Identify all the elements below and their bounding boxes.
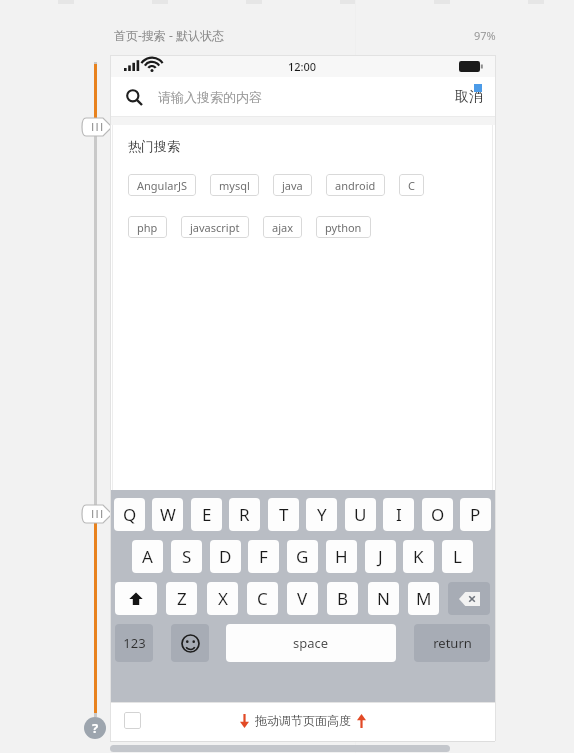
- button[interactable]: ajax: [263, 216, 302, 238]
- staticText: ajax: [272, 220, 293, 235]
- button[interactable]: E: [191, 498, 222, 531]
- button[interactable]: Shift: [115, 582, 157, 615]
- staticText: X: [218, 587, 228, 610]
- staticText: A: [142, 545, 153, 568]
- button[interactable]: Help: [84, 717, 106, 739]
- button[interactable]: return: [414, 624, 490, 662]
- staticText: Q: [123, 503, 137, 526]
- staticText: E: [202, 503, 212, 526]
- staticText: C: [408, 178, 415, 193]
- button[interactable]: java: [273, 174, 312, 196]
- staticText: N: [377, 587, 390, 610]
- staticText: I: [396, 503, 402, 526]
- staticText: AngularJS: [137, 178, 187, 193]
- staticText: P: [470, 503, 481, 526]
- staticText: python: [325, 220, 362, 235]
- button[interactable]: O: [422, 498, 453, 531]
- staticText: php: [137, 220, 158, 235]
- button[interactable]: R: [229, 498, 260, 531]
- button[interactable]: Z: [166, 582, 197, 615]
- staticText: T: [279, 503, 289, 526]
- button[interactable]: Resize handle: [82, 505, 112, 523]
- staticText: Y: [317, 503, 327, 526]
- button[interactable]: V: [287, 582, 318, 615]
- staticText: V: [297, 587, 308, 610]
- staticText: R: [239, 503, 250, 526]
- staticText: O: [431, 503, 445, 526]
- staticText: 取消: [455, 88, 483, 106]
- button[interactable]: B: [327, 582, 358, 615]
- button[interactable]: G: [287, 540, 318, 573]
- button[interactable]: U: [345, 498, 376, 531]
- staticText: S: [182, 545, 192, 568]
- staticText: 热门搜索: [128, 138, 180, 154]
- button[interactable]: space: [226, 624, 396, 662]
- button[interactable]: H: [326, 540, 357, 573]
- button[interactable]: Backspace: [448, 582, 490, 615]
- button[interactable]: P: [460, 498, 491, 531]
- button[interactable]: python: [316, 216, 371, 238]
- staticText: 12:00: [288, 59, 317, 74]
- button[interactable]: C: [399, 174, 424, 196]
- staticText: M: [416, 587, 432, 610]
- button[interactable]: W: [152, 498, 183, 531]
- button[interactable]: Y: [306, 498, 337, 531]
- button[interactable]: mysql: [210, 174, 259, 196]
- button[interactable]: D: [210, 540, 241, 573]
- staticText: C: [257, 587, 268, 610]
- staticText: Z: [177, 587, 187, 610]
- button[interactable]: Resize handle: [82, 118, 112, 136]
- button[interactable]: AngularJS: [128, 174, 196, 196]
- button[interactable]: Q: [114, 498, 145, 531]
- staticText: 首页-搜索 - 默认状态: [114, 27, 224, 43]
- button[interactable]: X: [207, 582, 238, 615]
- staticText: J: [378, 545, 383, 568]
- button[interactable]: L: [442, 540, 473, 573]
- staticText: mysql: [219, 178, 250, 193]
- staticText: F: [259, 545, 268, 568]
- button[interactable]: javascript: [181, 216, 249, 238]
- button[interactable]: F: [248, 540, 279, 573]
- button[interactable]: 123: [115, 624, 153, 662]
- staticText: javascript: [190, 220, 240, 235]
- button[interactable]: C: [247, 582, 278, 615]
- staticText: 拖动调节页面高度: [255, 713, 351, 728]
- staticText: 97%: [474, 28, 496, 43]
- button[interactable]: Select: [124, 712, 141, 729]
- button[interactable]: M: [408, 582, 439, 615]
- button[interactable]: S: [171, 540, 202, 573]
- staticText: D: [219, 545, 232, 568]
- staticText: H: [335, 545, 348, 568]
- button[interactable]: T: [268, 498, 299, 531]
- button[interactable]: I: [383, 498, 414, 531]
- button[interactable]: K: [403, 540, 434, 573]
- staticText: G: [296, 545, 309, 568]
- button[interactable]: N: [368, 582, 399, 615]
- button[interactable]: A: [132, 540, 163, 573]
- staticText: 123: [123, 634, 146, 652]
- staticText: ?: [92, 719, 99, 737]
- staticText: java: [282, 178, 303, 193]
- staticText: K: [413, 545, 424, 568]
- button[interactable]: Emoji: [171, 624, 209, 662]
- staticText: B: [337, 587, 349, 610]
- staticText: U: [354, 503, 367, 526]
- staticText: 请输入搜索的内容: [158, 89, 262, 105]
- staticText: L: [453, 545, 462, 568]
- button[interactable]: android: [326, 174, 385, 196]
- staticText: return: [433, 634, 472, 652]
- button[interactable]: 取消: [451, 82, 487, 112]
- staticText: W: [160, 503, 176, 526]
- button[interactable]: J: [365, 540, 396, 573]
- staticText: android: [335, 178, 376, 193]
- staticText: space: [293, 634, 329, 652]
- button[interactable]: php: [128, 216, 167, 238]
